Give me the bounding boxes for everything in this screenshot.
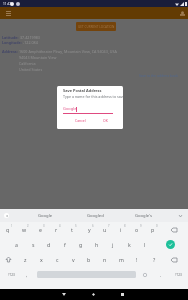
staticText: k xyxy=(128,241,131,248)
button[interactable]: Delete xyxy=(161,252,187,267)
staticText: ! xyxy=(136,256,138,263)
button[interactable]: s xyxy=(25,237,41,252)
staticText: r xyxy=(55,226,58,233)
staticText: United States xyxy=(19,67,43,72)
button[interactable]: c xyxy=(49,252,65,267)
button[interactable]: ?123 xyxy=(168,267,188,282)
staticText: California xyxy=(19,61,36,66)
button[interactable]: b xyxy=(81,252,97,267)
button[interactable]: q xyxy=(0,222,16,237)
button[interactable]: o xyxy=(129,222,145,237)
button[interactable]: , xyxy=(21,267,33,282)
button[interactable]: Enter xyxy=(155,237,185,252)
button[interactable]: Recent apps xyxy=(108,289,137,300)
staticText: -122.084 xyxy=(23,40,38,45)
staticText: . xyxy=(160,272,162,278)
button[interactable]: Home xyxy=(79,289,108,300)
button[interactable]: GET CURRENT LOCATION xyxy=(76,22,116,31)
staticText: h xyxy=(95,241,99,248)
staticText: i xyxy=(120,226,122,233)
button[interactable]: Expand suggestions xyxy=(1,209,12,222)
button[interactable]: h xyxy=(89,237,105,252)
staticText: z xyxy=(24,256,27,263)
button[interactable]: w xyxy=(16,222,32,237)
button[interactable]: n xyxy=(97,252,113,267)
staticText: 9 xyxy=(140,224,142,228)
staticText: 8 xyxy=(124,224,126,228)
button[interactable]: ! xyxy=(129,252,145,267)
button[interactable]: z xyxy=(17,252,33,267)
staticText: 5 xyxy=(75,224,77,228)
button[interactable]: y xyxy=(81,222,97,237)
staticText: v xyxy=(72,256,75,263)
button[interactable]: Backspace xyxy=(161,222,187,237)
staticText: 94043 Mountain View xyxy=(19,55,57,60)
button[interactable]: d xyxy=(41,237,57,252)
button[interactable]: m xyxy=(113,252,129,267)
button[interactable]: Google xyxy=(23,209,67,222)
button[interactable]: Cancel xyxy=(71,117,89,124)
staticText: Type a name for this address to save xyxy=(63,94,123,99)
staticText: b xyxy=(87,256,91,263)
button[interactable]: Shift xyxy=(0,252,17,267)
staticText: ?123 xyxy=(175,273,182,277)
staticText: 4 xyxy=(59,224,61,228)
button[interactable]: i xyxy=(113,222,129,237)
staticText: m xyxy=(119,256,124,263)
button[interactable]: ?123 xyxy=(0,267,22,282)
staticText: Google xyxy=(63,106,77,111)
staticText: c xyxy=(56,256,59,263)
staticText: n xyxy=(103,256,107,263)
staticText: f xyxy=(64,241,66,248)
button[interactable]: Back xyxy=(49,289,78,300)
staticText: 6 xyxy=(92,224,94,228)
staticText: 0 xyxy=(156,224,158,228)
staticText: ? xyxy=(153,256,156,263)
button[interactable]: Emoji xyxy=(138,267,152,282)
button[interactable]: t xyxy=(64,222,80,237)
button[interactable]: x xyxy=(33,252,49,267)
button[interactable]: a xyxy=(8,237,24,252)
button[interactable]: More options xyxy=(178,7,186,19)
button[interactable]: OK xyxy=(98,117,112,124)
staticText: Longitude: xyxy=(2,40,23,45)
button[interactable]: g xyxy=(73,237,89,252)
staticText: e xyxy=(39,226,42,233)
button[interactable]: j xyxy=(105,237,121,252)
button[interactable]: More suggestions xyxy=(176,209,185,222)
staticText: , xyxy=(26,272,28,278)
staticText: Google's xyxy=(135,213,152,219)
button[interactable]: v xyxy=(65,252,81,267)
button[interactable]: r xyxy=(48,222,64,237)
button[interactable]: e xyxy=(32,222,48,237)
button[interactable]: ? xyxy=(146,252,162,267)
staticText: 11:47 xyxy=(3,2,12,6)
staticText: Latitude: xyxy=(2,35,20,40)
button[interactable]: Open navigation menu xyxy=(3,7,14,19)
staticText: u xyxy=(103,226,107,233)
staticText: OK xyxy=(103,118,108,123)
button[interactable]: Save to the address book xyxy=(139,73,178,77)
staticText: Google xyxy=(38,213,53,219)
button[interactable]: l xyxy=(137,237,153,252)
staticText: j xyxy=(112,241,114,248)
button[interactable]: f xyxy=(57,237,73,252)
staticText: 1600 Amphitheatre Pkwy, Mountain View, C… xyxy=(19,49,117,54)
button[interactable]: Googled xyxy=(73,209,117,222)
staticText: x xyxy=(40,256,43,263)
staticText: Cancel xyxy=(75,118,86,123)
staticText: s xyxy=(32,241,35,248)
staticText: 37.4219983 xyxy=(20,35,40,40)
staticText: y xyxy=(88,226,91,233)
staticText: 1 xyxy=(11,224,13,228)
button[interactable]: u xyxy=(97,222,113,237)
button[interactable]: p xyxy=(145,222,161,237)
staticText: o xyxy=(135,226,139,233)
staticText: Address: xyxy=(2,49,19,54)
button[interactable]: k xyxy=(121,237,137,252)
staticText: Save to the address book xyxy=(139,73,178,77)
button[interactable]: Google's xyxy=(121,209,165,222)
staticText: Save Postal Address xyxy=(63,88,102,93)
